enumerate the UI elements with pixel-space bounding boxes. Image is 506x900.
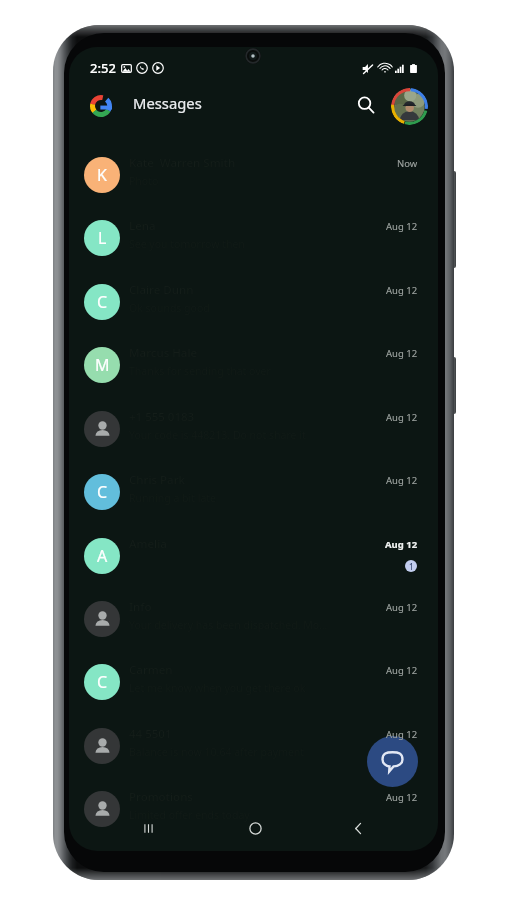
button[interactable]: C (69, 270, 438, 333)
staticText: Aug 12 (386, 728, 418, 741)
staticText: 1 (409, 561, 414, 572)
button[interactable]: A (69, 524, 438, 587)
button[interactable]: K (69, 143, 438, 206)
button[interactable]: Start chat (367, 736, 418, 787)
staticText: Messages (133, 93, 202, 113)
button[interactable]: C (69, 460, 438, 523)
staticText: Aug 12 (385, 538, 418, 551)
staticText: C (97, 671, 108, 693)
staticText: Aug 12 (386, 411, 418, 424)
staticText: 2:52 (90, 59, 116, 77)
button[interactable]: 44 5501 (69, 714, 438, 777)
staticText: L (98, 227, 107, 249)
button[interactable]: Home (233, 810, 277, 846)
staticText: Aug 12 (386, 791, 418, 804)
staticText: Aug 12 (386, 474, 418, 487)
button[interactable]: Search (349, 88, 383, 122)
staticText: Aug 12 (386, 284, 418, 297)
button[interactable]: M (69, 333, 438, 396)
staticText: Aug 12 (386, 664, 418, 677)
staticText: Now (397, 157, 418, 170)
button[interactable]: Info (69, 587, 438, 650)
button[interactable]: +1 555 0183 (69, 397, 438, 460)
staticText: C (97, 291, 108, 313)
staticText: Aug 12 (386, 220, 418, 233)
staticText: A (97, 545, 108, 567)
staticText: C (97, 481, 108, 503)
staticText: Aug 12 (386, 601, 418, 614)
staticText: M (95, 354, 110, 376)
staticText: K (97, 164, 107, 186)
staticText: Aug 12 (386, 347, 418, 360)
button[interactable]: Recents (126, 810, 170, 846)
button[interactable]: C (69, 650, 438, 713)
button[interactable]: Promotions (69, 777, 438, 840)
button[interactable]: Back (336, 810, 380, 846)
button[interactable]: L (69, 206, 438, 269)
button[interactable]: Account (391, 88, 428, 125)
